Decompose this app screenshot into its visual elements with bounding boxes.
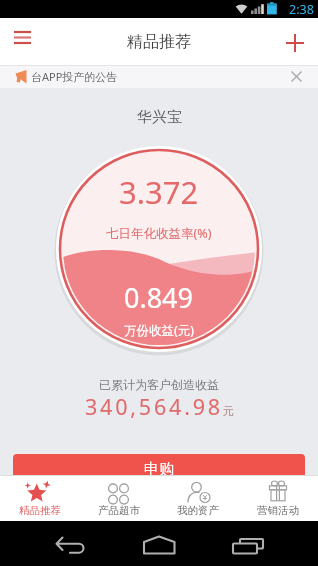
staticText: 精品推荐 [127, 32, 191, 52]
staticText: 我的资产 [177, 504, 219, 517]
staticText: 万份收益(元) [124, 322, 195, 339]
button[interactable] [285, 65, 308, 88]
button[interactable] [212, 521, 318, 566]
staticText: 营销活动 [257, 504, 299, 517]
staticText: 台APP投产的公告 [31, 69, 118, 84]
button[interactable]: 我的资产 [158, 475, 238, 521]
button[interactable] [8, 28, 38, 56]
staticText: 元 [223, 404, 234, 418]
staticText: 340,564.98 [85, 392, 223, 421]
button[interactable] [106, 521, 212, 566]
staticText: 七日年化收益率(%) [106, 225, 212, 242]
button[interactable]: 产品超市 [79, 475, 158, 521]
button[interactable]: 营销活动 [238, 475, 318, 521]
staticText: 2:38 [289, 1, 314, 18]
button[interactable] [0, 521, 106, 566]
staticText: 申购 [144, 460, 174, 475]
staticText: 产品超市 [98, 504, 140, 517]
staticText: 已累计为客户创造收益 [99, 377, 219, 392]
button[interactable]: 申购 [13, 454, 305, 475]
staticText: 0.849 [124, 279, 194, 316]
staticText: 3.372 [119, 171, 199, 213]
button[interactable] [281, 29, 309, 57]
button[interactable]: 精品推荐 [0, 475, 79, 521]
staticText: 精品推荐 [19, 504, 61, 517]
staticText: 华兴宝 [137, 108, 182, 127]
